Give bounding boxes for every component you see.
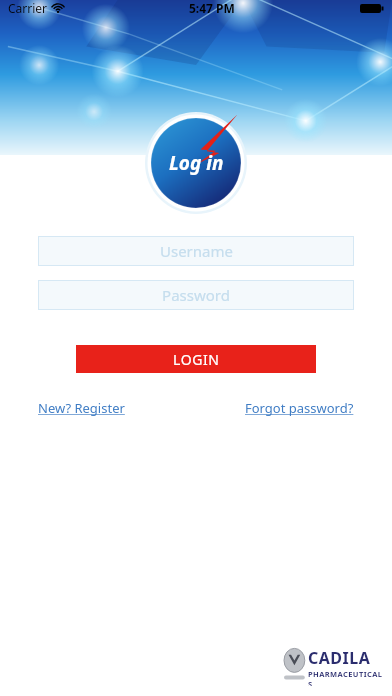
staticText: Carrier	[8, 0, 48, 16]
button[interactable]: New? Register	[38, 399, 125, 417]
staticText: 5:47 PM	[189, 0, 235, 16]
staticText: LOGIN	[173, 350, 220, 369]
staticText: CADILA	[308, 647, 371, 669]
staticText: Username	[160, 241, 233, 261]
button[interactable]: LOGIN	[76, 345, 316, 373]
button[interactable]: Username	[38, 236, 354, 266]
staticText: Log in	[169, 150, 224, 176]
button[interactable]: Forgot password?	[245, 399, 354, 417]
staticText: Password	[162, 285, 230, 305]
staticText: PHARMACEUTICALS	[308, 669, 386, 686]
button[interactable]: Password	[38, 280, 354, 310]
